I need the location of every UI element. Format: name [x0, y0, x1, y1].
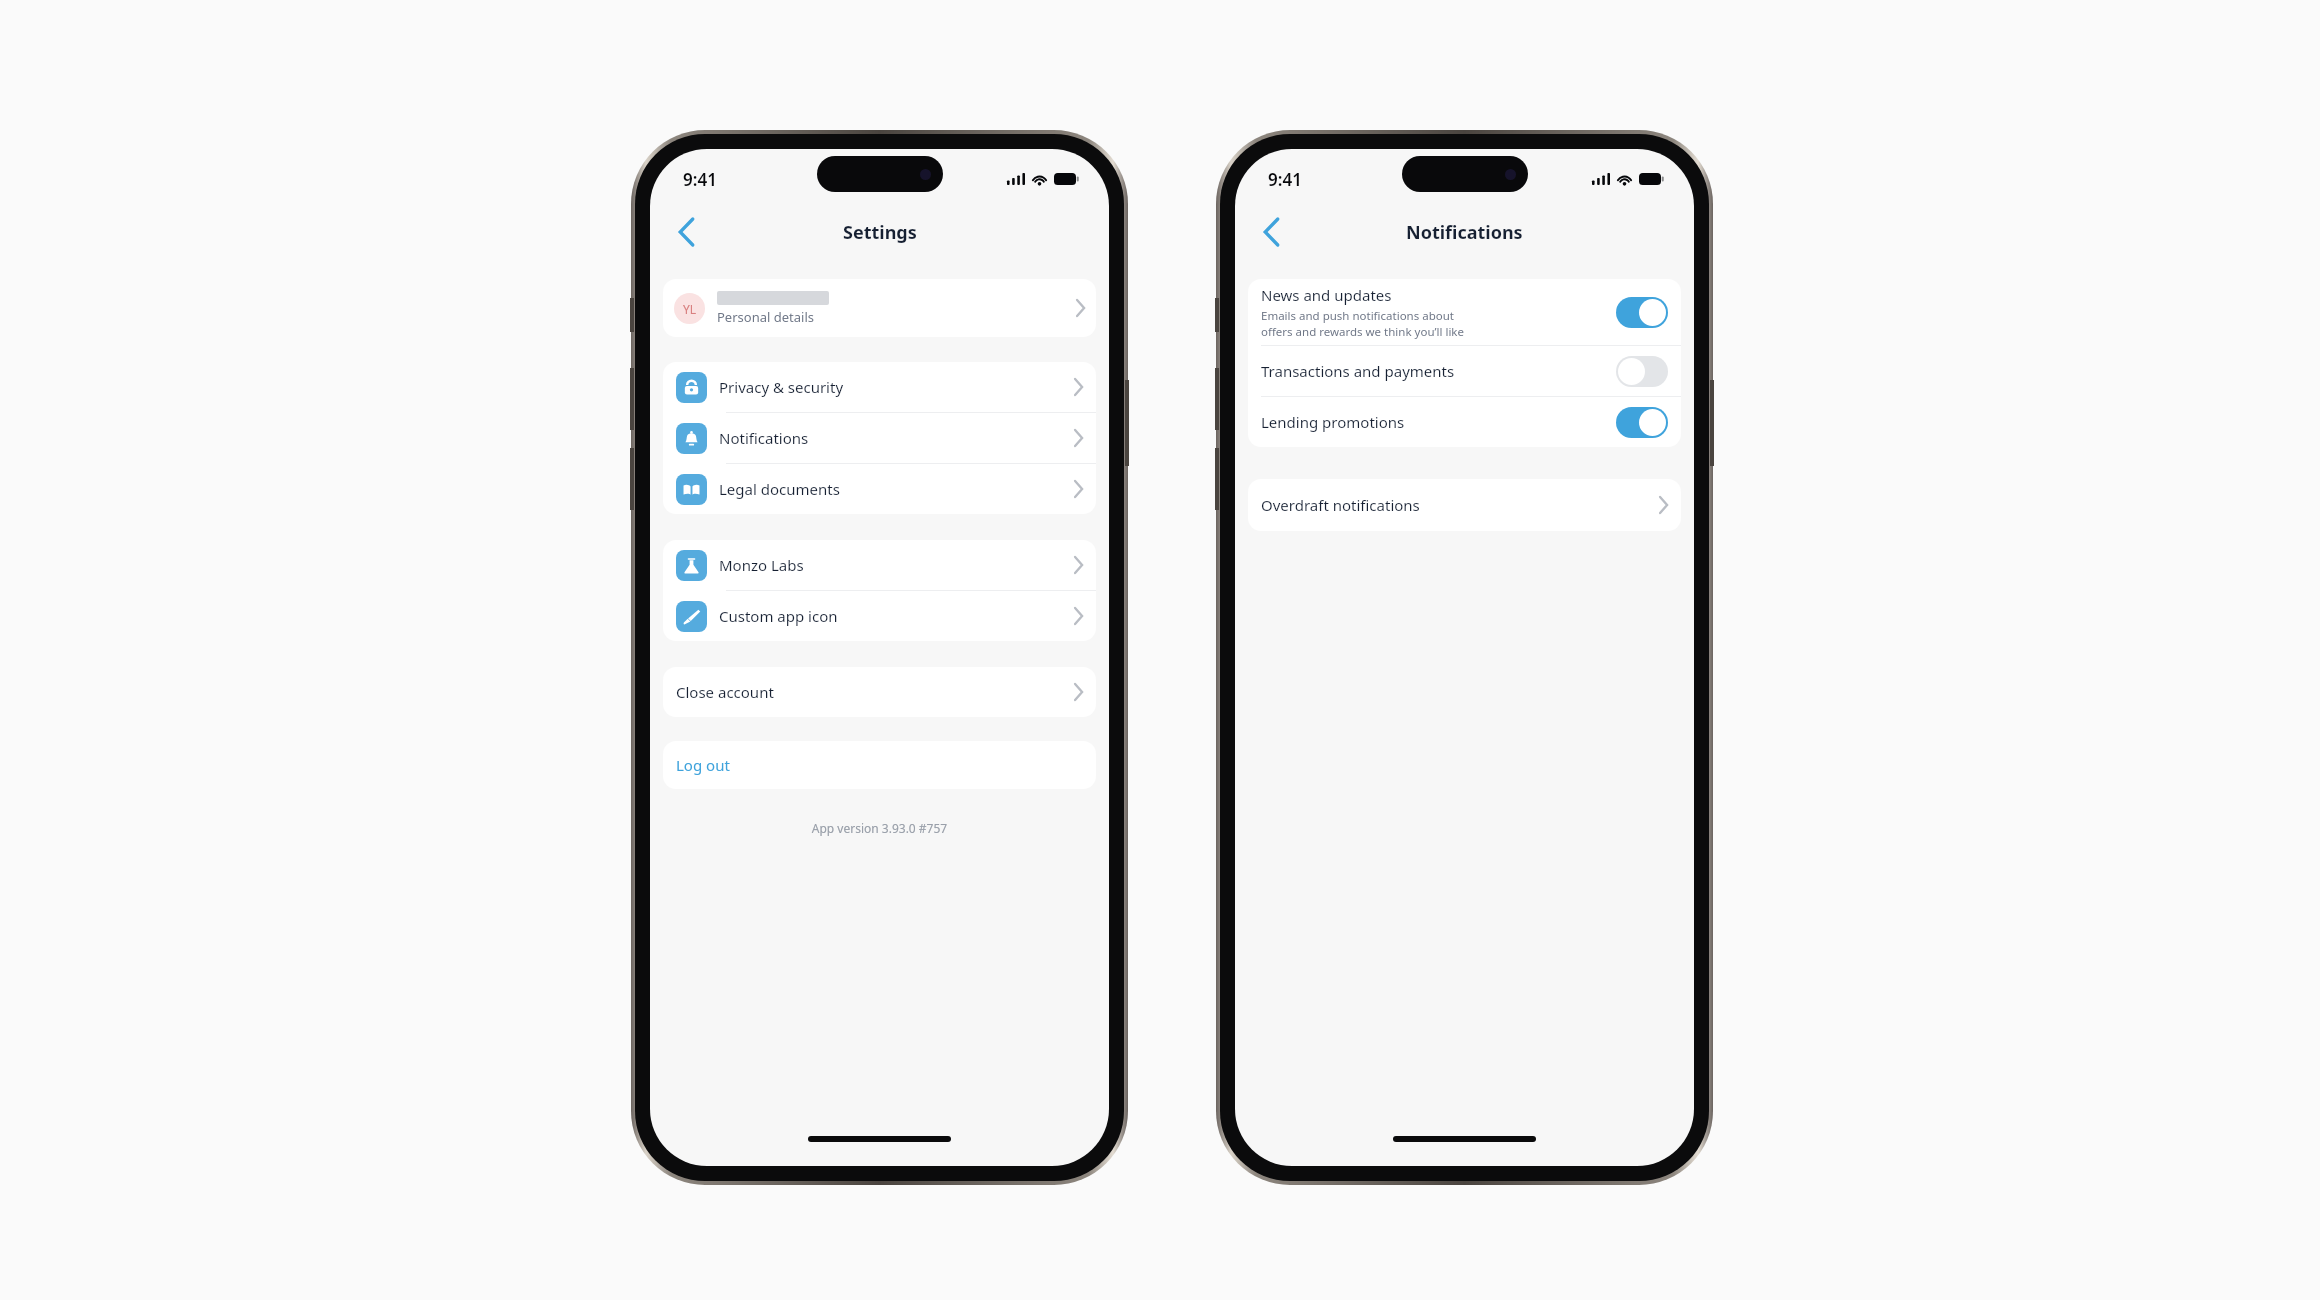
staticText: App version 3.93.0 #757 [650, 820, 1109, 836]
button[interactable]: Transactions and payments [1248, 346, 1681, 396]
button[interactable]: Privacy & security [663, 362, 1096, 412]
button[interactable]: YL [663, 279, 1096, 337]
button[interactable]: Off [1616, 356, 1668, 387]
staticText: Privacy & security [719, 377, 1074, 397]
button[interactable]: Lending promotions [1248, 397, 1681, 447]
staticText: Monzo Labs [719, 555, 1074, 575]
staticText: 9:41 [683, 168, 717, 191]
staticText: Lending promotions [1261, 412, 1616, 432]
staticText: Personal details [717, 308, 814, 326]
button[interactable]: Notifications [663, 413, 1096, 463]
staticText: Settings [843, 220, 917, 245]
button[interactable]: News and updates [1248, 279, 1681, 345]
staticText: Transactions and payments [1261, 361, 1616, 381]
button[interactable]: Close account [663, 667, 1096, 717]
button[interactable]: Log out [663, 741, 1096, 789]
staticText: 9:41 [1268, 168, 1302, 191]
staticText: News and updates [1261, 285, 1392, 305]
staticText: Close account [676, 682, 1074, 702]
button[interactable]: Custom app icon [663, 591, 1096, 641]
staticText: Notifications [1406, 220, 1523, 245]
staticText: YL [683, 301, 697, 317]
button[interactable]: On [1616, 407, 1668, 438]
button[interactable]: On [1616, 297, 1668, 328]
button[interactable]: Legal documents [663, 464, 1096, 514]
button[interactable]: Overdraft notifications [1248, 479, 1681, 531]
staticText: Legal documents [719, 479, 1074, 499]
staticText: Log out [676, 755, 730, 775]
staticText: Notifications [719, 428, 1074, 448]
staticText: Overdraft notifications [1261, 495, 1659, 515]
button[interactable]: Back [664, 210, 708, 254]
staticText: Custom app icon [719, 606, 1074, 626]
button[interactable]: Monzo Labs [663, 540, 1096, 590]
button[interactable]: Back [1249, 210, 1293, 254]
staticText: Emails and push notifications about offe… [1261, 308, 1464, 339]
